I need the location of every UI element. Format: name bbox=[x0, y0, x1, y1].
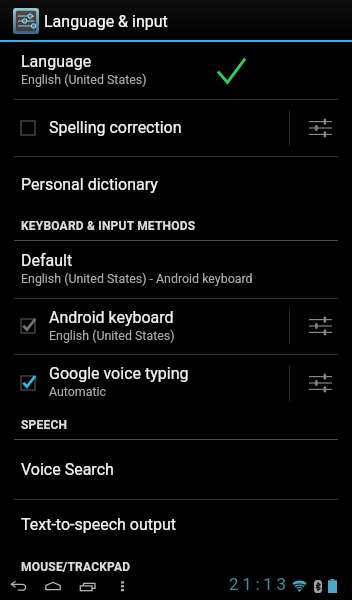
button[interactable]: Input method settings bbox=[290, 298, 352, 354]
button[interactable]: Default bbox=[0, 241, 352, 298]
staticText: Personal dictionary bbox=[21, 175, 158, 194]
staticText: Language & input bbox=[44, 12, 168, 31]
staticText: Automatic bbox=[49, 384, 107, 399]
staticText: English (United States) bbox=[49, 328, 175, 343]
button[interactable]: Language & input bbox=[0, 0, 352, 40]
button[interactable]: Input method settings bbox=[290, 354, 352, 411]
button[interactable]: Back bbox=[1, 573, 35, 600]
button[interactable]: Google voice typing bbox=[0, 354, 289, 411]
button[interactable]: Voice Search bbox=[0, 439, 352, 499]
staticText: Google voice typing bbox=[49, 364, 189, 383]
button[interactable]: Language bbox=[0, 42, 352, 99]
staticText: English (United States) - Android keyboa… bbox=[21, 271, 253, 286]
button[interactable]: Personal dictionary bbox=[0, 156, 352, 213]
staticText: Language bbox=[21, 52, 92, 71]
staticText: Default bbox=[21, 251, 73, 270]
button[interactable]: Android keyboard bbox=[0, 298, 289, 354]
button[interactable]: Home bbox=[36, 573, 70, 600]
button[interactable]: Input method settings bbox=[290, 99, 352, 156]
staticText: Spelling correction bbox=[49, 118, 182, 137]
button[interactable]: Text-to-speech output bbox=[0, 499, 352, 556]
staticText: 21:13 bbox=[229, 574, 290, 594]
button[interactable]: More options bbox=[105, 573, 139, 600]
staticText: Voice Search bbox=[21, 460, 114, 479]
button[interactable]: Recents bbox=[70, 573, 104, 600]
staticText: KEYBOARD & INPUT METHODS bbox=[21, 219, 196, 233]
button[interactable]: Spelling correction bbox=[0, 99, 289, 156]
staticText: SPEECH bbox=[21, 418, 68, 432]
staticText: Android keyboard bbox=[49, 308, 174, 327]
staticText: English (United States) bbox=[21, 72, 147, 87]
staticText: Text-to-speech output bbox=[21, 515, 177, 534]
staticText: MOUSE/TRACKPAD bbox=[21, 560, 131, 574]
